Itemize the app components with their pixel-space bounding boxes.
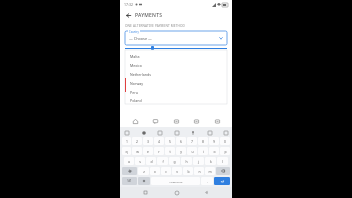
staticText: a (128, 159, 130, 164)
staticText: h (185, 159, 188, 164)
button[interactable]: 5 (165, 137, 175, 145)
button[interactable]: Back (202, 188, 211, 197)
staticText: l (222, 159, 223, 164)
button[interactable]: 2 (132, 137, 142, 145)
button[interactable]: t (165, 147, 175, 155)
button[interactable]: Emoji (140, 129, 147, 136)
staticText: !#1 (127, 179, 132, 183)
button[interactable]: y (176, 147, 186, 155)
button[interactable]: a (124, 157, 134, 165)
button[interactable]: Norway (130, 79, 227, 88)
button[interactable]: More (222, 129, 229, 136)
staticText: 4 (158, 139, 160, 144)
button[interactable]: Profile (212, 116, 223, 127)
staticText: Mexico (130, 63, 142, 68)
button[interactable]: p (220, 147, 230, 155)
staticText: Poland (130, 98, 142, 103)
staticText: Peru (130, 90, 138, 95)
button[interactable]: Home (130, 116, 141, 127)
button[interactable]: Back (124, 11, 133, 20)
staticText: Malta (130, 54, 140, 59)
staticText: 0 (224, 139, 226, 144)
button[interactable]: r (154, 147, 164, 155)
button[interactable]: Wallet (171, 116, 182, 127)
button[interactable]: 9 (209, 137, 219, 145)
button[interactable]: c (161, 167, 171, 175)
staticText: c (165, 169, 167, 174)
button[interactable]: Mexico (130, 61, 227, 70)
staticText: y (180, 149, 182, 154)
staticText: 5 (169, 139, 171, 144)
staticText: m (208, 169, 212, 174)
button[interactable]: Sticker (206, 129, 213, 136)
button[interactable]: Recents (141, 188, 150, 197)
button[interactable]: h (181, 157, 192, 165)
button[interactable]: v (172, 167, 182, 175)
button[interactable]: Poland (130, 97, 227, 104)
staticText: r (158, 149, 160, 154)
button[interactable]: Enter (214, 177, 230, 185)
button[interactable]: e (143, 147, 153, 155)
staticText: d (150, 159, 153, 164)
button[interactable]: g (169, 157, 180, 165)
button[interactable]: o (209, 147, 219, 155)
staticText: i (203, 149, 204, 154)
button[interactable]: Peru (130, 88, 227, 97)
button[interactable]: 6 (176, 137, 186, 145)
button[interactable]: Messages (150, 116, 161, 127)
button[interactable]: Malta (130, 52, 227, 61)
staticText: q (125, 149, 128, 154)
button[interactable]: x (150, 167, 160, 175)
button[interactable]: 1 (122, 137, 131, 145)
button[interactable]: 3 (143, 137, 153, 145)
staticText: 8 (202, 139, 204, 144)
button[interactable]: z (138, 167, 149, 175)
staticText: x (154, 169, 156, 174)
staticText: p (224, 149, 227, 154)
button[interactable]: GIF (156, 129, 163, 136)
button[interactable]: l (217, 157, 228, 165)
button[interactable]: u (187, 147, 197, 155)
staticText: t (169, 149, 171, 154)
button[interactable]: Translate (123, 129, 130, 136)
staticText: 3 (147, 139, 149, 144)
staticText: Nederlands (169, 180, 183, 183)
button[interactable]: Nederlands (151, 177, 200, 185)
button[interactable]: Shift (122, 167, 137, 175)
staticText: s (139, 159, 141, 164)
button[interactable]: Country (125, 31, 227, 45)
button[interactable]: Voice input (189, 129, 196, 136)
staticText: Norway (130, 81, 144, 86)
button[interactable]: d (146, 157, 156, 165)
button[interactable]: Home (172, 188, 181, 197)
button[interactable]: Card (191, 116, 202, 127)
staticText: b (187, 169, 190, 174)
button[interactable]: q (122, 147, 131, 155)
staticText: PAYMENTS (135, 12, 163, 19)
staticText: k (210, 159, 212, 164)
staticText: w (136, 149, 139, 154)
button[interactable]: i (198, 147, 208, 155)
button[interactable]: 8 (198, 137, 208, 145)
button[interactable]: n (194, 167, 204, 175)
button[interactable]: k (205, 157, 216, 165)
button[interactable]: 4 (154, 137, 164, 145)
button[interactable]: Clipboard (173, 129, 180, 136)
staticText: Netherlands (130, 72, 151, 77)
staticText: . (207, 179, 208, 184)
button[interactable]: 7 (187, 137, 197, 145)
button[interactable]: !#1 (122, 177, 137, 185)
button[interactable]: Netherlands (130, 70, 227, 79)
button[interactable]: f (157, 157, 168, 165)
button[interactable]: s (135, 157, 145, 165)
button[interactable]: b (183, 167, 193, 175)
button[interactable]: Backspace (216, 167, 230, 175)
button[interactable]: 0 (220, 137, 230, 145)
staticText: 6 (180, 139, 182, 144)
button[interactable]: Settings (138, 177, 150, 185)
button[interactable]: j (193, 157, 204, 165)
staticText: — Choose — (129, 36, 152, 41)
button[interactable]: m (205, 167, 215, 175)
button[interactable]: w (132, 147, 142, 155)
